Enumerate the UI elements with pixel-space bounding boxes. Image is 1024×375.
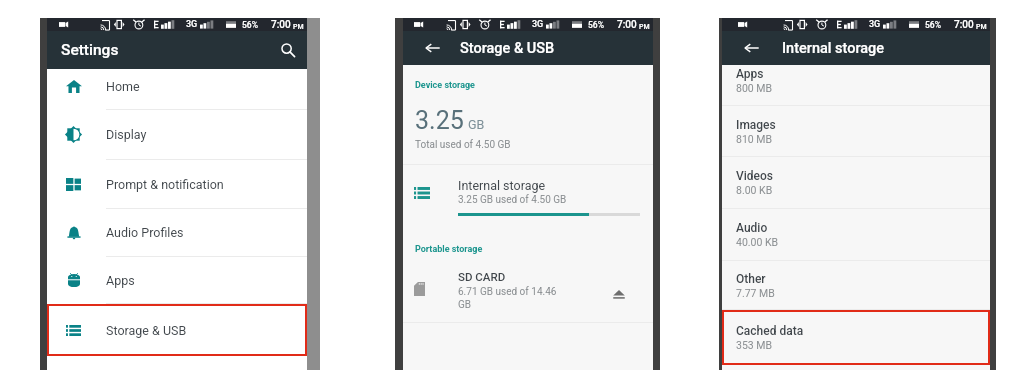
staticText: Storage & USB xyxy=(106,323,187,338)
staticText: PM xyxy=(293,23,304,31)
staticText: Device storage xyxy=(415,80,475,91)
button[interactable]: Apps xyxy=(722,65,990,105)
staticText: 56% xyxy=(588,20,604,30)
staticText: Audio xyxy=(736,221,768,235)
button[interactable]: Eject xyxy=(606,281,632,307)
staticText: 3.25 xyxy=(415,106,464,135)
staticText: Audio Profiles xyxy=(106,225,184,240)
button[interactable]: Back xyxy=(738,35,764,61)
staticText: 8.00 KB xyxy=(736,184,773,196)
staticText: 40.00 KB xyxy=(736,236,779,248)
staticText: 7:00 xyxy=(271,19,291,31)
button[interactable]: Display xyxy=(47,110,307,159)
staticText: 3G xyxy=(532,19,544,30)
staticText: PM xyxy=(976,23,987,31)
staticText: 56% xyxy=(242,20,258,30)
button[interactable]: Search xyxy=(275,37,301,63)
button[interactable]: Videos xyxy=(722,157,990,208)
button[interactable]: Apps xyxy=(47,257,307,303)
staticText: SD CARD xyxy=(458,270,506,283)
staticText: 7.77 MB xyxy=(736,287,775,299)
staticText: 56% xyxy=(925,20,941,30)
button[interactable]: Home xyxy=(47,61,307,111)
staticText: GB xyxy=(468,117,485,132)
staticText: Prompt & notification xyxy=(106,177,224,192)
staticText: Internal storage xyxy=(458,178,546,193)
staticText: PM xyxy=(639,23,650,31)
staticText: 3G xyxy=(186,19,198,30)
staticText: Settings xyxy=(61,41,119,59)
button[interactable]: Other xyxy=(722,261,990,309)
staticText: 3.25 GB used of 4.50 GB xyxy=(458,194,567,206)
staticText: Videos xyxy=(736,169,773,183)
staticText: Internal storage xyxy=(782,40,885,57)
button[interactable]: Back xyxy=(419,35,445,61)
button[interactable]: Audio xyxy=(722,209,990,260)
staticText: Apps xyxy=(736,67,764,81)
button[interactable]: Images xyxy=(722,106,990,156)
staticText: 810 MB xyxy=(736,133,773,145)
staticText: Total used of 4.50 GB xyxy=(415,139,511,151)
staticText: 800 MB xyxy=(736,82,773,94)
button[interactable]: Cached data xyxy=(722,310,990,365)
staticText: Apps xyxy=(106,273,135,288)
button[interactable]: Storage & USB xyxy=(47,304,307,356)
button[interactable]: SD CARD xyxy=(403,261,653,321)
staticText: Storage & USB xyxy=(460,40,555,57)
staticText: Home xyxy=(106,79,140,94)
staticText: Images xyxy=(736,118,776,132)
staticText: 6.71 GB used of 14.46 GB xyxy=(458,286,557,311)
staticText: 7:00 xyxy=(617,19,637,31)
staticText: Portable storage xyxy=(415,244,483,255)
staticText: 7:00 xyxy=(954,19,974,31)
staticText: Display xyxy=(106,127,147,142)
button[interactable]: Prompt & notification xyxy=(47,160,307,208)
button[interactable]: Audio Profiles xyxy=(47,209,307,256)
staticText: 353 MB xyxy=(736,339,773,351)
staticText: Other xyxy=(736,272,766,286)
button[interactable]: Internal storage xyxy=(403,165,653,223)
staticText: Cached data xyxy=(736,324,804,338)
staticText: 3G xyxy=(869,19,881,30)
